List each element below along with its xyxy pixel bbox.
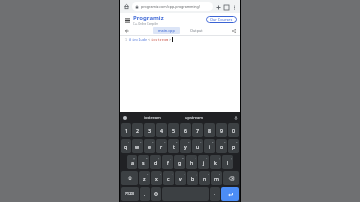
button[interactable]: j <box>198 155 209 169</box>
button[interactable]: Backspace <box>223 171 239 185</box>
button[interactable]: w <box>132 139 143 153</box>
button[interactable]: 6 <box>180 123 191 137</box>
staticText: j <box>203 159 205 166</box>
button[interactable]: 7 <box>192 123 203 137</box>
button[interactable]: r <box>156 139 167 153</box>
button[interactable]: Enter <box>221 187 239 201</box>
button[interactable]: z <box>139 171 150 185</box>
staticText: ; <box>196 172 197 175</box>
button[interactable]: 0 <box>228 123 239 137</box>
button[interactable]: New tab <box>214 3 222 11</box>
staticText: : <box>184 172 185 175</box>
staticText: ?123 <box>125 191 135 197</box>
button[interactable]: p <box>228 139 239 153</box>
button[interactable]: e <box>144 139 155 153</box>
button[interactable]: s <box>138 155 149 169</box>
staticText: 0 <box>232 127 235 134</box>
staticText: r <box>160 143 163 150</box>
staticText: Our Courses <box>210 17 233 22</box>
button[interactable]: More options <box>230 3 238 11</box>
staticText: a <box>131 159 134 166</box>
button[interactable]: programiz.com/cpp-programming/online-com… <box>132 2 213 11</box>
staticText: 1 <box>128 140 130 143</box>
button[interactable]: t <box>168 139 179 153</box>
button[interactable]: 5 <box>168 123 179 137</box>
staticText: n <box>203 175 207 182</box>
staticText: C++ Online Compiler <box>133 22 159 26</box>
staticText: u <box>196 143 200 150</box>
staticText: 8 <box>212 140 214 143</box>
button[interactable]: 8 <box>204 123 215 137</box>
button[interactable]: c <box>163 171 174 185</box>
staticText: l <box>227 159 229 166</box>
button[interactable]: 2 <box>132 123 143 137</box>
button[interactable]: Back <box>123 27 130 34</box>
staticText: 7 <box>196 127 199 134</box>
staticText: k <box>214 159 217 166</box>
button[interactable]: i <box>204 139 215 153</box>
button[interactable]: d <box>150 155 161 169</box>
button[interactable]: a <box>127 155 137 169</box>
staticText: 7 <box>200 140 202 143</box>
staticText: 3 <box>148 127 151 134</box>
button[interactable]: f <box>162 155 173 169</box>
staticText: & <box>182 156 184 159</box>
button[interactable]: u <box>192 139 203 153</box>
button[interactable]: 1 <box>121 123 131 137</box>
staticText: < <box>148 37 151 42</box>
button[interactable]: 3 <box>144 123 155 137</box>
staticText: - <box>195 156 196 159</box>
staticText: * <box>147 172 149 175</box>
button[interactable]: Google <box>121 114 128 121</box>
staticText: + <box>206 156 208 159</box>
button[interactable]: g <box>174 155 185 169</box>
button[interactable]: m <box>211 171 222 185</box>
button[interactable]: x <box>151 171 162 185</box>
staticText: 6 <box>188 140 190 143</box>
staticText: q <box>124 143 128 150</box>
button[interactable]: main.cpp <box>153 27 180 34</box>
button[interactable]: ?123 <box>121 187 139 201</box>
staticText: f <box>167 159 169 166</box>
button[interactable]: Tabs <box>222 3 230 11</box>
button[interactable]: n <box>199 171 210 185</box>
staticText: v <box>179 175 182 182</box>
staticText: h <box>190 159 194 166</box>
staticText: p <box>232 143 236 150</box>
button[interactable]: Shift <box>121 171 138 185</box>
button[interactable]: 4 <box>156 123 167 137</box>
staticText: t <box>173 143 175 150</box>
button[interactable]: v <box>175 171 186 185</box>
button[interactable]: , <box>140 187 150 201</box>
button[interactable]: Our Courses <box>206 16 237 23</box>
staticText: g <box>178 159 182 166</box>
staticText: 9 <box>224 140 226 143</box>
button[interactable]: o <box>216 139 227 153</box>
button[interactable]: Emoji <box>151 187 161 201</box>
button[interactable]: 9 <box>216 123 227 137</box>
staticText: Programiz <box>133 14 164 22</box>
button[interactable]: Voice input <box>232 114 239 121</box>
button[interactable]: h <box>186 155 197 169</box>
staticText: 4 <box>164 140 166 143</box>
button[interactable]: . <box>210 187 220 201</box>
button[interactable]: Share <box>230 27 237 34</box>
staticText: c <box>167 175 170 182</box>
staticText: s <box>142 159 145 166</box>
button[interactable]: y <box>180 139 191 153</box>
staticText: w <box>135 143 140 150</box>
button[interactable]: Menu <box>123 16 131 24</box>
staticText: iostream <box>144 115 161 120</box>
staticText: # <box>129 37 132 42</box>
button[interactable]: Output <box>186 27 207 34</box>
button[interactable]: q <box>121 139 131 153</box>
button[interactable]: l <box>222 155 233 169</box>
button[interactable]: iostream <box>132 115 173 120</box>
button[interactable]: Home <box>122 2 131 11</box>
staticText: Output <box>190 28 203 33</box>
button[interactable]: upstream <box>173 115 215 120</box>
button[interactable]: b <box>187 171 198 185</box>
button[interactable]: k <box>210 155 221 169</box>
